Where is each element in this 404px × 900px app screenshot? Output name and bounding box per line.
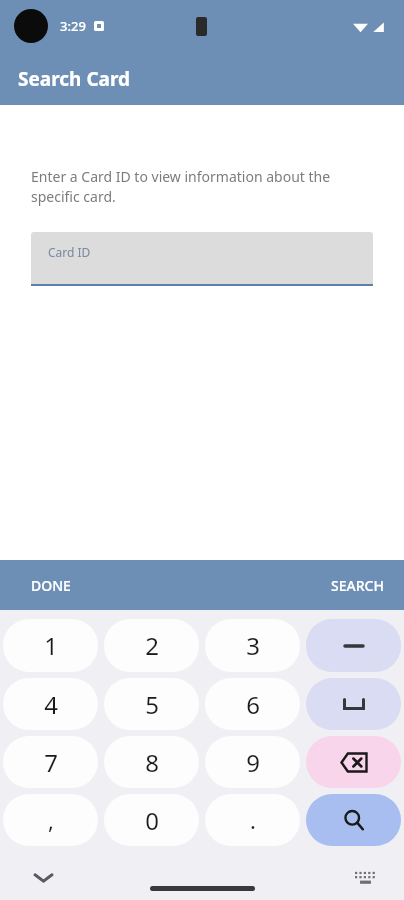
staticText: 4 [44,688,58,721]
staticText: 2 [145,629,159,662]
button[interactable]: Minus [306,619,401,672]
staticText: , [48,805,54,835]
staticText: 3:29 [60,17,86,35]
staticText: 3 [246,629,260,662]
staticText: 8 [145,746,159,779]
button[interactable]: Space [306,678,401,730]
button[interactable]: DONE [0,560,102,610]
button[interactable]: . [205,794,300,846]
button[interactable]: 6 [205,678,300,730]
button[interactable]: Hide keyboard [24,859,62,897]
button[interactable]: 3 [205,619,300,672]
staticText: Enter a Card ID to view information abou… [31,167,331,206]
button[interactable]: Search [306,794,401,846]
staticText: Search Card [18,66,131,92]
button[interactable]: , [3,794,98,846]
button[interactable]: 8 [104,736,199,788]
staticText: DONE [31,576,71,595]
staticText: Card ID [48,244,91,260]
button[interactable]: SEARCH [311,560,404,610]
staticText: SEARCH [331,576,384,595]
button[interactable]: 7 [3,736,98,788]
button[interactable]: Change keyboard [346,859,384,897]
staticText: 1 [44,629,58,662]
staticText: 7 [44,746,58,779]
staticText: 9 [246,746,260,779]
button[interactable]: Card ID [31,232,373,286]
button[interactable]: 1 [3,619,98,672]
staticText: 6 [246,688,260,721]
button[interactable]: 4 [3,678,98,730]
staticText: 0 [145,804,159,837]
button[interactable]: 5 [104,678,199,730]
staticText: . [250,805,256,835]
staticText: 5 [145,688,159,721]
button[interactable]: 9 [205,736,300,788]
button[interactable]: 2 [104,619,199,672]
button[interactable]: Backspace [306,736,401,788]
button[interactable]: 0 [104,794,199,846]
